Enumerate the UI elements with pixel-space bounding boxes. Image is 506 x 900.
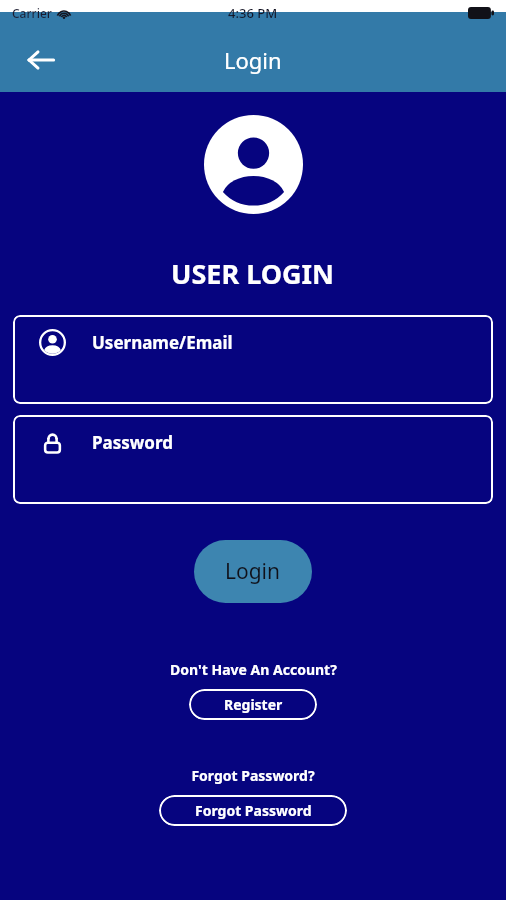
staticText: Carrier [12, 5, 52, 21]
staticText: Don't Have An Account? [170, 660, 337, 679]
button[interactable]: Password [13, 415, 493, 504]
button[interactable]: Forgot Password [159, 795, 347, 826]
staticText: 4:36 PM [228, 4, 278, 22]
staticText: Forgot Password? [191, 766, 315, 785]
button[interactable]: Back [16, 35, 66, 85]
staticText: USER LOGIN [171, 255, 335, 292]
staticText: Login [224, 45, 282, 75]
staticText: Username/Email [92, 331, 233, 354]
staticText: Login [225, 557, 281, 586]
button[interactable]: Login [194, 540, 312, 603]
staticText: Forgot Password [195, 801, 312, 820]
button[interactable]: Register [189, 689, 317, 720]
staticText: Register [224, 695, 283, 714]
button[interactable]: Username/Email [13, 315, 493, 404]
staticText: Password [92, 431, 173, 454]
